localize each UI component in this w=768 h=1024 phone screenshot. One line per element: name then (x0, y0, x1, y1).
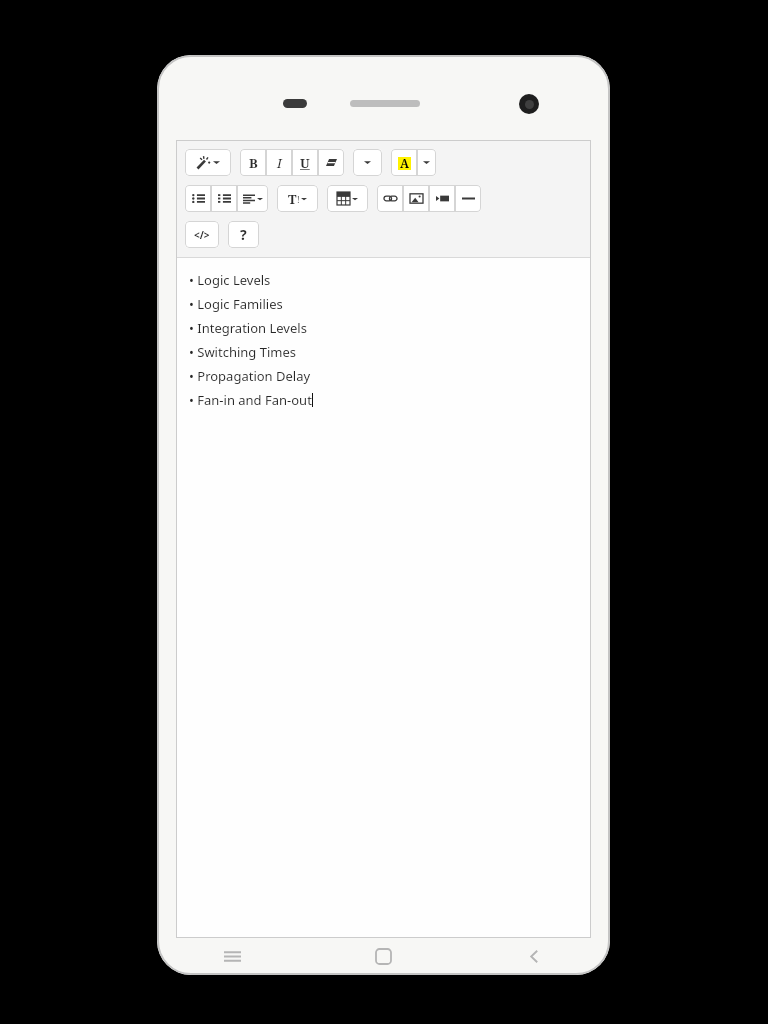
button[interactable]: Clear formatting (318, 149, 344, 176)
button[interactable]: Back (459, 938, 610, 975)
button[interactable]: Italic (266, 149, 292, 176)
button[interactable]: Insert image (403, 185, 429, 212)
button[interactable]: Underline (292, 149, 318, 176)
button[interactable]: Insert table (327, 185, 368, 212)
button[interactable]: More text options (353, 149, 382, 176)
button[interactable]: Insert link (377, 185, 403, 212)
button[interactable]: Paragraph style (277, 185, 318, 212)
staticText: • Switching Times (189, 343, 297, 361)
button[interactable]: Bulleted list (185, 185, 211, 212)
button[interactable]: Insert video (429, 185, 455, 212)
staticText: I (277, 154, 282, 172)
staticText: • Logic Levels (189, 271, 271, 289)
button[interactable]: Menu (157, 938, 308, 975)
staticText: T (288, 190, 297, 208)
button[interactable]: Styles (185, 149, 231, 176)
button[interactable]: Home (308, 938, 459, 975)
button[interactable]: Help (228, 221, 259, 248)
staticText: ! (297, 194, 300, 205)
button[interactable]: Horizontal rule (455, 185, 481, 212)
button[interactable]: Alignment (237, 185, 268, 212)
staticText: • Logic Families (189, 295, 283, 313)
staticText: • Integration Levels (189, 319, 307, 337)
staticText: • Fan-in and Fan-out (189, 391, 312, 409)
button[interactable]: Text highlight (391, 149, 417, 176)
staticText: B (249, 154, 258, 172)
button[interactable]: Choose color (417, 149, 436, 176)
button[interactable]: Bold (240, 149, 266, 176)
button[interactable]: Numbered list (211, 185, 237, 212)
staticText: </> (194, 228, 210, 242)
staticText: U (300, 154, 310, 172)
staticText: A (400, 155, 410, 171)
staticText: ? (240, 225, 247, 244)
button[interactable]: Code view (185, 221, 219, 248)
staticText: • Propagation Delay (189, 367, 311, 385)
